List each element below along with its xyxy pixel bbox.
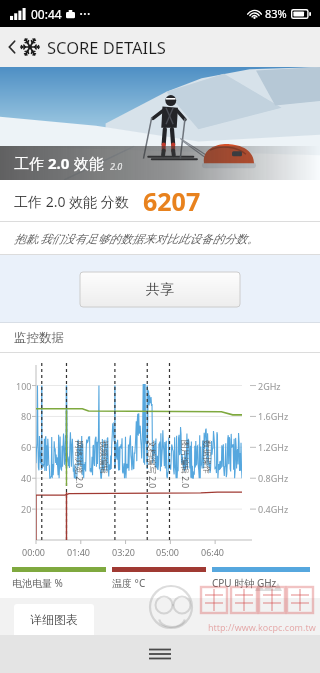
other: Back [6,38,18,56]
staticText: 电池电量 % [12,576,63,590]
staticText: 00:00 [22,546,46,558]
staticText: 03:20 [112,546,136,558]
staticText: 6207 [143,184,201,218]
staticText: 文档编写 2.0 [146,440,158,489]
staticText: 2.0 [48,153,70,173]
staticText: 20 [21,503,32,515]
staticText: 视频编辑 [98,440,109,474]
button[interactable]: Back [0,27,320,67]
staticText: 83% [265,6,287,21]
staticText: 01:40 [67,546,91,558]
staticText: 05:00 [156,546,180,558]
staticText: 效能 [70,153,104,173]
staticText: CPU 时钟 GHz [212,576,277,590]
staticText: 网络浏览 2.0 [73,440,85,489]
staticText: 00:44 [31,6,62,22]
staticText: 0.8GHz [258,472,289,484]
staticText: http://www.kocpc.com.tw [208,621,316,633]
staticText: 2GHz [258,380,281,392]
staticText: 60 [21,441,32,453]
staticText: 1.2GHz [258,441,289,453]
staticText: 40 [21,472,32,484]
staticText: 详细图表 [30,612,78,627]
staticText: 图片编辑 2.0 [179,440,191,489]
staticText: 数据操作 [201,440,212,474]
staticText: 共享 [146,281,174,299]
staticText: 工作 2.0 效能 分数 [14,192,129,211]
staticText: 06:40 [201,546,225,558]
staticText: 工作 [14,153,48,173]
staticText: 温度 °C [112,576,146,590]
staticText: 2.0 [110,160,123,172]
button[interactable]: Menu [132,635,188,673]
staticText: SCORE DETAILS [47,36,166,58]
button[interactable]: 详细图表 [14,604,94,635]
staticText: 监控数据 [14,330,64,346]
staticText: 1.6GHz [258,410,289,422]
staticText: 0.4GHz [258,503,289,515]
button[interactable]: 共享 [80,272,240,307]
staticText: 80 [21,410,32,422]
staticText: 100 [16,380,32,392]
staticText: 抱歉,我们没有足够的数据来对比此设备的分数。 [14,231,259,247]
